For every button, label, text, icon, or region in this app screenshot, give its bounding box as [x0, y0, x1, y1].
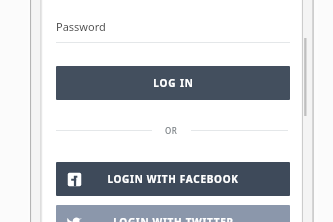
other: Twitter	[67, 215, 82, 222]
button[interactable]: LOG IN	[56, 66, 290, 100]
staticText: LOGIN WITH FACEBOOK	[107, 172, 239, 186]
button[interactable]: Twitter	[56, 205, 290, 222]
button[interactable]: Password	[56, 14, 290, 43]
staticText: LOG IN	[153, 76, 194, 90]
other: Facebook	[67, 172, 82, 187]
button[interactable]: Facebook	[56, 162, 290, 196]
staticText: Password	[56, 19, 106, 34]
staticText: OR	[165, 125, 178, 136]
staticText: LOGIN WITH TWITTER	[113, 215, 234, 222]
